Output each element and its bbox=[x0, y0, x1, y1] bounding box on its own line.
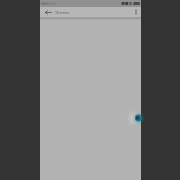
staticText: Themes bbox=[55, 10, 70, 15]
button[interactable]: Navigate up bbox=[41, 7, 55, 17]
button[interactable]: Add bbox=[120, 100, 146, 132]
button[interactable]: More options bbox=[131, 7, 141, 17]
